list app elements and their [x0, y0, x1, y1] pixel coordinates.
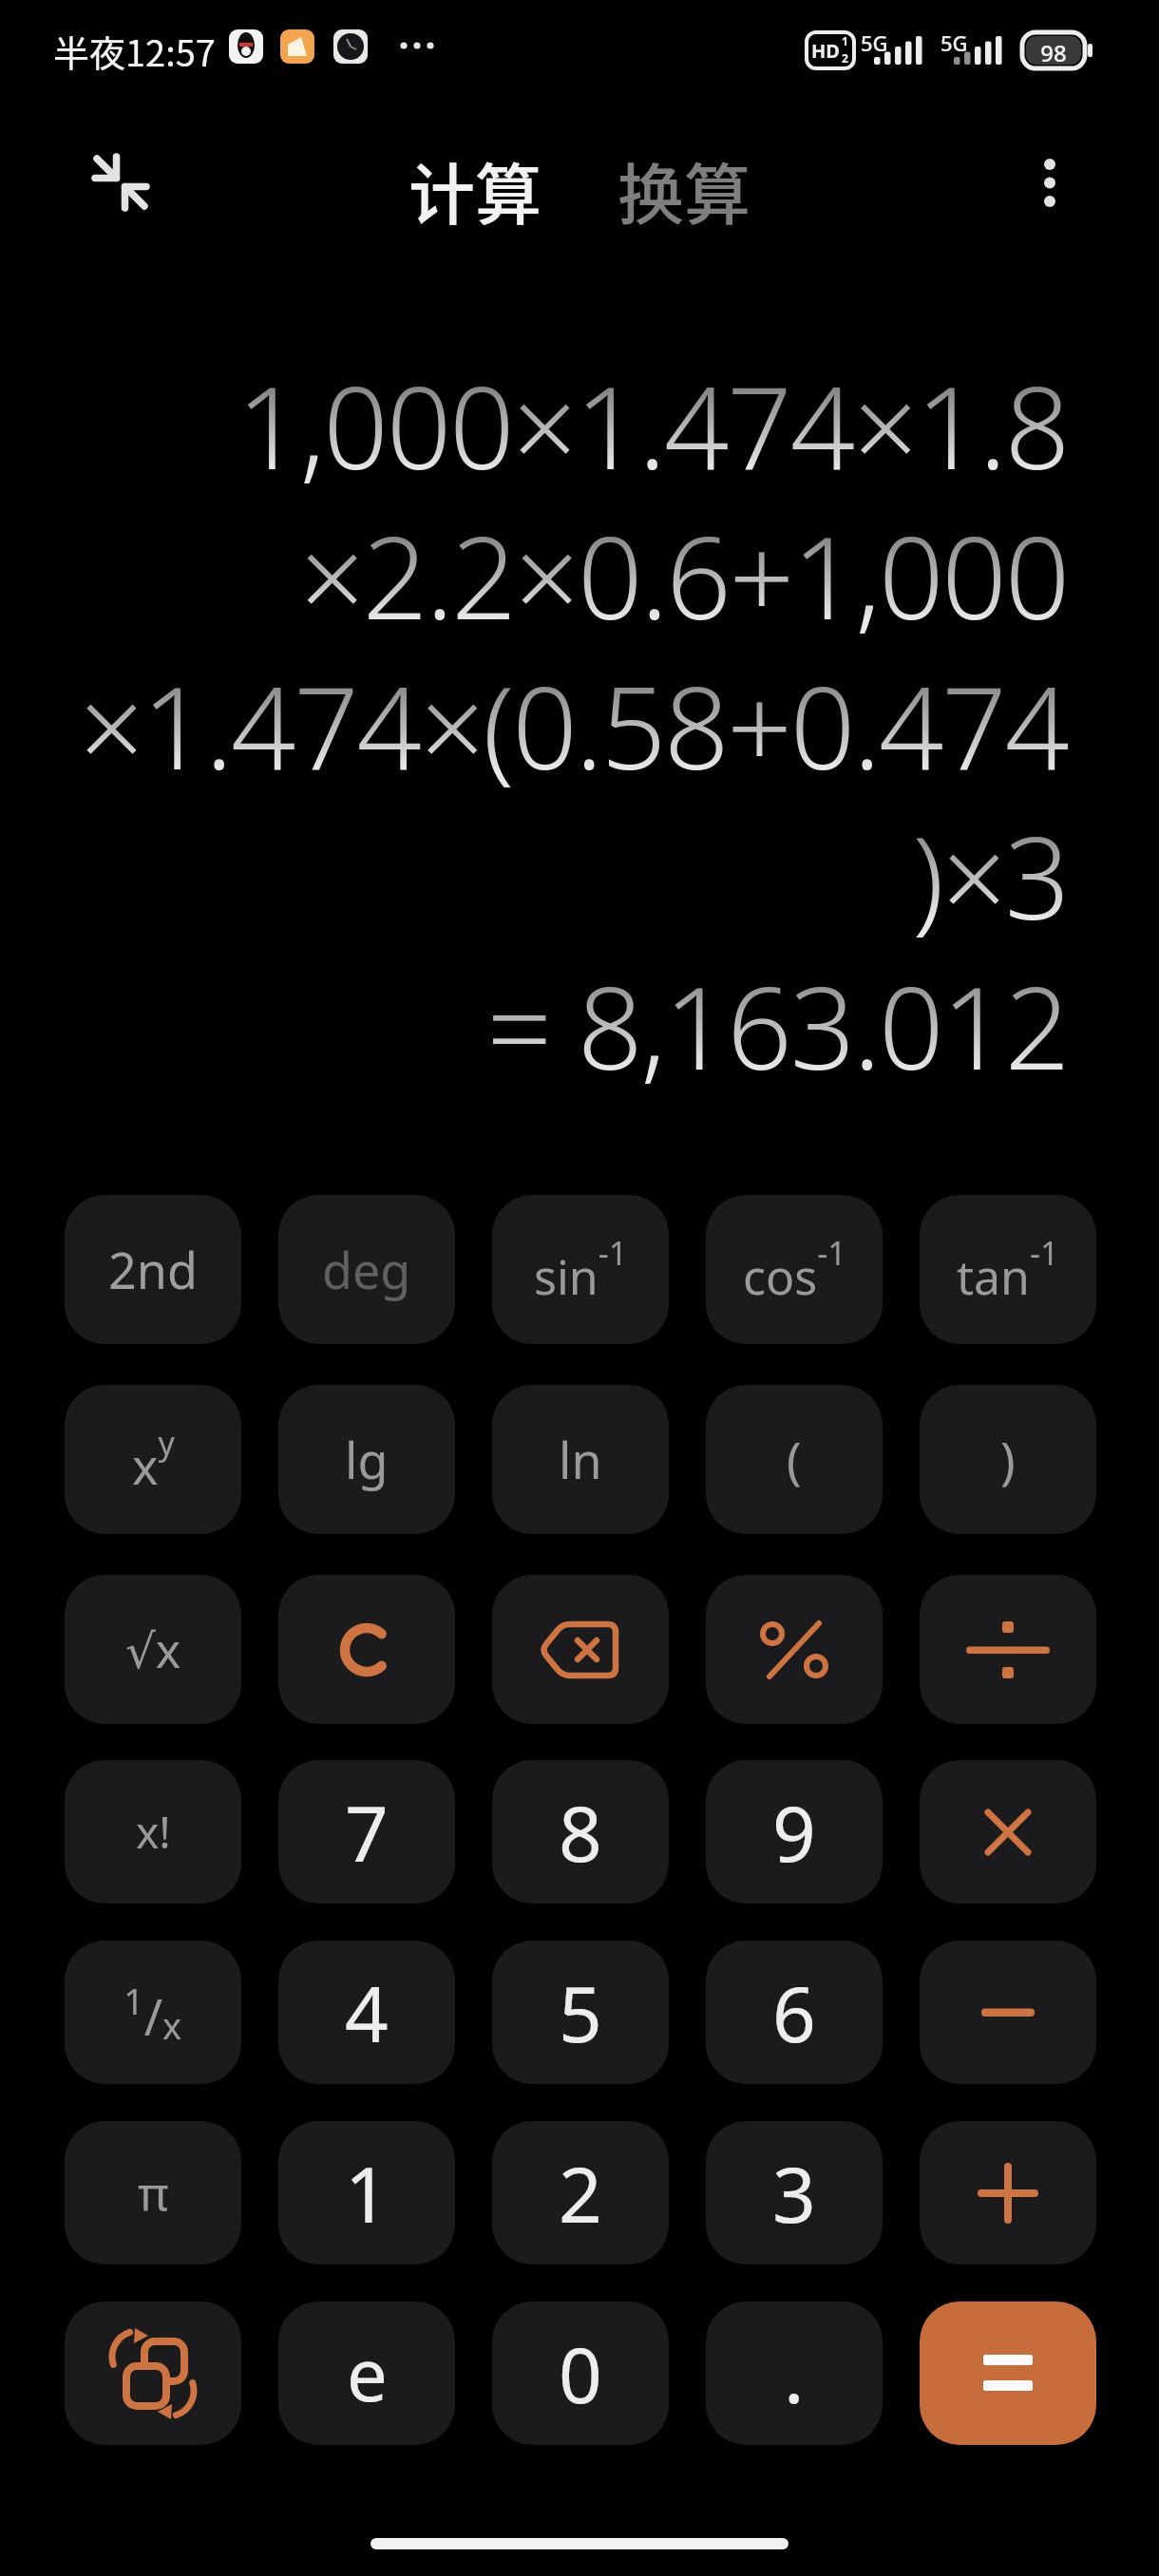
staticText: 1 — [345, 2141, 389, 2245]
button[interactable] — [65, 2301, 241, 2445]
button[interactable]: 9 — [706, 1760, 883, 1904]
button[interactable]: . — [706, 2301, 883, 2445]
staticText: xy — [132, 1421, 175, 1499]
button[interactable] — [492, 1575, 669, 1724]
button[interactable]: 8 — [492, 1760, 669, 1904]
staticText: sin-1 — [534, 1231, 628, 1309]
button[interactable]: ( — [706, 1385, 883, 1534]
staticText: . — [784, 2321, 805, 2425]
button[interactable]: xy — [65, 1385, 241, 1534]
button[interactable]: 7 — [278, 1760, 455, 1904]
button[interactable]: lg — [278, 1385, 455, 1534]
button[interactable] — [278, 1575, 455, 1724]
staticText: 0 — [559, 2321, 602, 2425]
staticText: )×3 — [0, 798, 1068, 948]
staticText: √x — [125, 1618, 181, 1682]
staticText: = 8,163.012 — [0, 948, 1068, 1098]
staticText: 98 — [1022, 37, 1085, 73]
button[interactable]: 1/x — [65, 1941, 241, 2084]
staticText: 6 — [772, 1960, 816, 2064]
staticText: 1 — [842, 33, 848, 48]
button[interactable]: 1 — [278, 2121, 455, 2264]
button[interactable] — [920, 1575, 1096, 1724]
button[interactable] — [920, 2121, 1096, 2264]
staticText: 计算 — [408, 142, 541, 228]
staticText: 2 — [842, 50, 848, 66]
staticText: 换算 — [617, 142, 750, 228]
button[interactable]: ) — [920, 1385, 1096, 1534]
button[interactable]: √x — [65, 1575, 241, 1724]
button[interactable]: π — [65, 2121, 241, 2264]
button[interactable]: 2 — [492, 2121, 669, 2264]
button[interactable]: tan-1 — [920, 1195, 1096, 1344]
button[interactable] — [72, 133, 167, 228]
staticText: 2nd — [108, 1236, 198, 1303]
button[interactable] — [920, 1941, 1096, 2084]
button[interactable] — [920, 2301, 1096, 2445]
staticText: tan-1 — [957, 1231, 1059, 1309]
button[interactable]: e — [278, 2301, 455, 2445]
staticText: π — [138, 2161, 169, 2226]
button[interactable]: deg — [278, 1195, 455, 1344]
staticText: 9 — [772, 1780, 816, 1884]
button[interactable] — [706, 1575, 883, 1724]
staticText: ×1.474×(0.58+0.474 — [0, 648, 1068, 798]
staticText: 3 — [772, 2141, 816, 2245]
staticText: x! — [136, 1802, 171, 1862]
button[interactable] — [1007, 140, 1092, 235]
staticText: 5G — [861, 28, 888, 57]
button[interactable]: 0 — [492, 2301, 669, 2445]
button[interactable]: cos-1 — [706, 1195, 883, 1344]
button[interactable]: 3 — [706, 2121, 883, 2264]
button[interactable]: 6 — [706, 1941, 883, 2084]
staticText: 半夜12:57 — [53, 25, 216, 77]
button[interactable]: ln — [492, 1385, 669, 1534]
staticText: 4 — [345, 1960, 389, 2064]
staticText: ) — [1000, 1426, 1016, 1493]
staticText: 5 — [559, 1960, 602, 2064]
button[interactable]: x! — [65, 1760, 241, 1904]
staticText: lg — [345, 1426, 389, 1493]
button[interactable]: sin-1 — [492, 1195, 669, 1344]
staticText: HD — [811, 38, 840, 64]
staticText: cos-1 — [743, 1231, 846, 1309]
staticText: ×2.2×0.6+1,000 — [0, 498, 1068, 648]
button[interactable]: 换算 — [598, 142, 769, 228]
staticText: deg — [322, 1236, 411, 1303]
staticText: 5G — [940, 28, 968, 57]
button[interactable]: 2nd — [65, 1195, 241, 1344]
staticText: ln — [559, 1426, 602, 1493]
staticText: ( — [787, 1426, 802, 1493]
button[interactable]: 5 — [492, 1941, 669, 2084]
staticText: 8 — [559, 1780, 602, 1884]
button[interactable]: 4 — [278, 1941, 455, 2084]
staticText: 1,000×1.474×1.8 — [0, 348, 1068, 498]
staticText: 2 — [559, 2141, 602, 2245]
button[interactable] — [920, 1760, 1096, 1904]
button[interactable]: 计算 — [389, 142, 560, 228]
staticText: 1/x — [123, 1976, 182, 2050]
staticText: 7 — [345, 1780, 389, 1884]
staticText: e — [347, 2324, 388, 2423]
